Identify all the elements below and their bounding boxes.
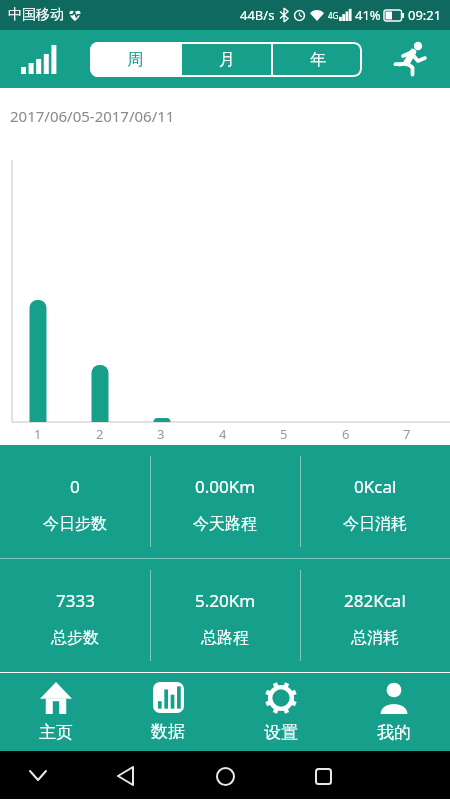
button[interactable]: 周	[90, 42, 180, 77]
button[interactable]	[310, 765, 336, 787]
button[interactable]: 数据	[112, 673, 224, 751]
staticText: 5.20Km	[195, 589, 256, 612]
staticText: 周	[127, 50, 143, 70]
button[interactable]	[0, 30, 80, 88]
button[interactable]: 我的	[337, 673, 450, 751]
button[interactable]: 0.00Km	[150, 445, 300, 558]
staticText: 总路程	[201, 628, 249, 648]
button[interactable]	[372, 30, 450, 88]
staticText: 主页	[39, 722, 73, 743]
button[interactable]: 设置	[224, 673, 337, 751]
button[interactable]	[212, 765, 238, 787]
button[interactable]	[24, 763, 52, 787]
staticText: 0Kcal	[354, 475, 397, 498]
staticText: 数据	[151, 721, 185, 742]
staticText: 年	[310, 50, 326, 70]
staticText: 3	[157, 425, 165, 443]
button[interactable]: 月	[182, 42, 271, 77]
button[interactable]: 0Kcal	[300, 445, 450, 558]
staticText: 2	[96, 425, 104, 443]
button[interactable]: 7333	[0, 559, 150, 672]
button[interactable]: 主页	[0, 673, 112, 751]
staticText: 2017/06/05-2017/06/11	[10, 106, 175, 126]
staticText: 今日步数	[43, 514, 107, 534]
staticText: 6	[342, 425, 350, 443]
staticText: 今天路程	[193, 514, 257, 534]
button[interactable]: 年	[273, 42, 362, 77]
staticText: 总步数	[51, 628, 99, 648]
staticText: 设置	[264, 722, 298, 743]
staticText: 7333	[56, 589, 95, 612]
staticText: 中国移动	[8, 6, 64, 24]
staticText: 09:21	[408, 6, 442, 24]
staticText: 1	[34, 425, 42, 443]
button[interactable]: 0	[0, 445, 150, 558]
button[interactable]: 282Kcal	[300, 559, 450, 672]
button[interactable]: 5.20Km	[150, 559, 300, 672]
staticText: 我的	[377, 722, 411, 743]
staticText: 总消耗	[351, 628, 399, 648]
staticText: 4G	[328, 10, 339, 21]
staticText: 0	[70, 475, 80, 498]
staticText: 7	[403, 425, 411, 443]
staticText: 5	[280, 425, 288, 443]
staticText: 44B/s	[240, 6, 275, 24]
staticText: 今日消耗	[343, 514, 407, 534]
staticText: 41%	[355, 6, 381, 24]
staticText: 0.00Km	[195, 475, 256, 498]
staticText: 4	[219, 425, 227, 443]
staticText: 282Kcal	[344, 589, 406, 612]
staticText: 月	[219, 50, 235, 70]
button[interactable]	[112, 765, 138, 787]
